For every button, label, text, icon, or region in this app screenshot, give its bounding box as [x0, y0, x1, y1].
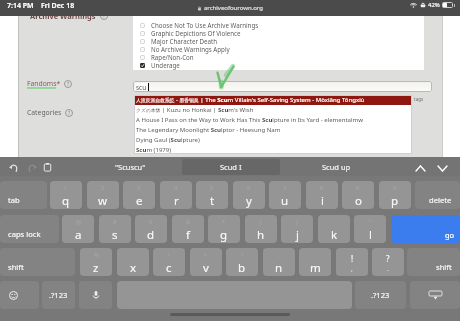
staticText: .?123 [49, 290, 68, 300]
button[interactable]: Scud I [182, 159, 280, 175]
staticText: k [331, 227, 338, 243]
staticText: w [98, 193, 108, 209]
button[interactable]: Redo [25, 161, 38, 174]
button[interactable]: .?123 [355, 281, 406, 309]
staticText: caps lock [8, 229, 41, 239]
staticText: / [241, 251, 244, 258]
button[interactable]: + [153, 248, 185, 276]
staticText: * [222, 218, 226, 225]
staticText: 8 [320, 184, 324, 191]
button[interactable]: ' [318, 215, 350, 243]
button[interactable]: * [208, 215, 240, 243]
button[interactable]: Scum (1979) [134, 145, 412, 154]
staticText: 3 [137, 184, 141, 191]
button[interactable]: Choose Not To Use Archive Warnings [140, 21, 259, 29]
staticText: % [94, 251, 99, 258]
staticText: go [445, 230, 455, 240]
button[interactable]: クズの本懐 | Kuzu no Honkai | Scum's Wish [134, 105, 412, 115]
staticText: 9 [356, 184, 360, 191]
staticText: s [112, 227, 118, 243]
button[interactable]: "Scuscu" [79, 159, 182, 175]
button[interactable]: Underage [140, 61, 180, 69]
staticText: y [246, 193, 252, 209]
button[interactable]: " [354, 215, 386, 243]
button[interactable]: shift [0, 248, 75, 276]
staticText: Fri Dec 18 [41, 1, 75, 11]
button[interactable]: = [190, 248, 222, 276]
staticText: u [281, 193, 289, 209]
button[interactable]: @ [62, 215, 94, 243]
button[interactable]: ( [245, 215, 277, 243]
button[interactable]: Next suggestion [434, 160, 450, 176]
staticText: ? [103, 13, 106, 20]
button[interactable]: 1 [50, 181, 82, 209]
button[interactable]: & [172, 215, 204, 243]
button[interactable]: 8 [306, 181, 338, 209]
button[interactable]: A House I Pass on the Way to Work Has Th… [134, 115, 412, 125]
button[interactable]: $ [135, 215, 167, 243]
button[interactable]: 3 [123, 181, 155, 209]
staticText: クズの本懐 | Kuzu no Honkai | Scum's Wish [136, 106, 254, 114]
button[interactable]: 5 [196, 181, 228, 209]
staticText: scu [136, 83, 147, 91]
staticText: b [238, 260, 246, 276]
button[interactable]: caps lock [0, 215, 59, 243]
button[interactable]: .?123 [42, 281, 75, 309]
button[interactable]: go [391, 215, 460, 243]
button[interactable]: Dying Gaul (Sculpture) [134, 135, 412, 145]
staticText: a [75, 227, 82, 243]
button[interactable]: ! [336, 248, 368, 276]
staticText: g [220, 227, 228, 243]
button[interactable]: Previous suggestion [412, 160, 428, 176]
button[interactable]: tab [0, 181, 47, 209]
button[interactable]: Scud up [285, 159, 388, 175]
staticText: 人渣反派自救系统 - 墨香铜臭 | The Scum Villain's Sel… [136, 96, 365, 104]
button[interactable]: Graphic Depictions Of Violence [140, 29, 241, 37]
button[interactable]: # [99, 215, 131, 243]
staticText: r [174, 193, 179, 209]
staticText: . [387, 264, 389, 274]
staticText: Fandoms* [27, 79, 61, 88]
button[interactable]: - [117, 248, 149, 276]
button[interactable]: shift [407, 248, 460, 276]
staticText: The Legendary Moonlight Sculptor - Heesu… [136, 126, 281, 134]
button[interactable]: % [80, 248, 112, 276]
staticText: p [391, 193, 399, 209]
button[interactable]: 6 [233, 181, 265, 209]
button[interactable]: 7 [269, 181, 301, 209]
staticText: ? [67, 81, 70, 88]
button[interactable]: No Archive Warnings Apply [140, 45, 230, 53]
button[interactable]: ) [281, 215, 313, 243]
button[interactable]: delete [415, 181, 460, 209]
staticText: shift [8, 262, 24, 272]
button[interactable]: 2 [87, 181, 119, 209]
button[interactable]: 人渣反派自救系统 - 墨香铜臭 | The Scum Villain's Sel… [134, 95, 412, 105]
button[interactable]: Undo [7, 161, 20, 174]
staticText: ? [68, 110, 71, 117]
button[interactable]: Hide keyboard [410, 281, 460, 309]
button[interactable]: : [299, 248, 331, 276]
staticText: i [321, 193, 324, 209]
staticText: delete [429, 195, 452, 205]
button[interactable]: The Legendary Moonlight Sculptor - Heesu… [134, 125, 412, 135]
button[interactable]: ? [372, 248, 404, 276]
staticText: Dying Gaul (Sculpture) [136, 136, 200, 144]
button[interactable]: Rape/Non-Con [140, 53, 194, 61]
staticText: archiveofourown.org [204, 4, 263, 12]
staticText: 0 [393, 184, 397, 191]
button[interactable]: 0 [379, 181, 411, 209]
staticText: Scud up [322, 162, 351, 172]
staticText: d [147, 227, 155, 243]
button[interactable]: Major Character Death [140, 37, 218, 45]
button[interactable]: ; [263, 248, 295, 276]
staticText: @ [76, 218, 81, 225]
staticText: t [210, 193, 215, 209]
button[interactable]: Emoji [0, 281, 39, 309]
button[interactable]: / [226, 248, 258, 276]
button[interactable]: Dictation [79, 281, 112, 309]
button[interactable]: 9 [342, 181, 374, 209]
button[interactable]: Paste [41, 161, 54, 174]
button[interactable]: 4 [160, 181, 192, 209]
